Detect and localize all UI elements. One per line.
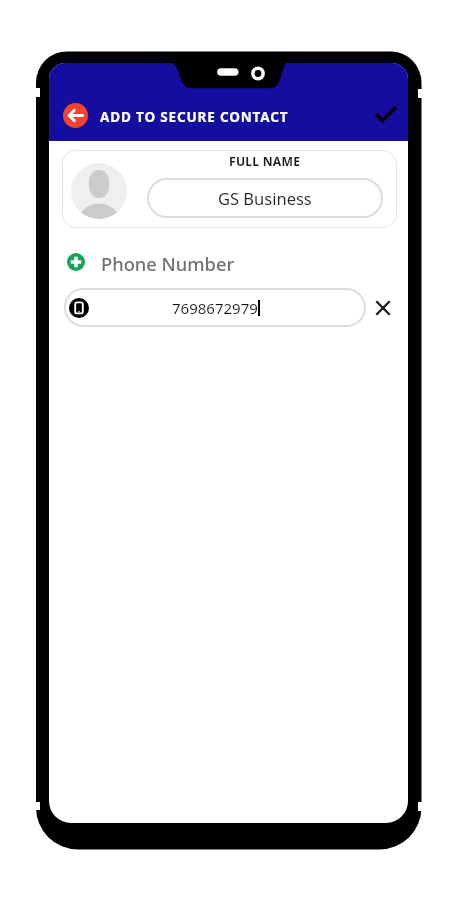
button[interactable] xyxy=(375,300,391,316)
staticText: 7698672979 xyxy=(172,298,258,318)
staticText: ADD TO SECURE CONTACT xyxy=(100,108,289,126)
staticText: GS Business xyxy=(218,187,312,209)
button[interactable] xyxy=(63,103,88,128)
staticText: Phone Number xyxy=(101,251,235,273)
button[interactable]: 7698672979 xyxy=(64,288,366,327)
staticText: FULL NAME xyxy=(229,153,301,170)
button[interactable]: GS Business xyxy=(147,178,383,218)
button[interactable] xyxy=(373,101,399,127)
